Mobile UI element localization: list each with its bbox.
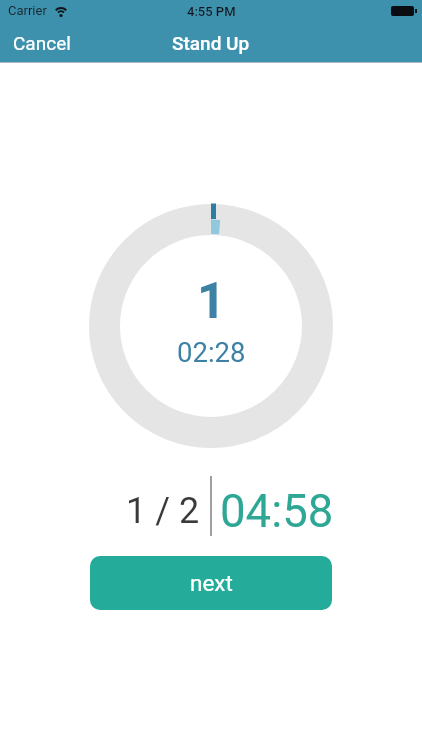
button[interactable]: Cancel [0,26,90,60]
staticText: 04:58 [220,485,334,535]
staticText: Carrier [8,3,47,18]
staticText: Cancel [13,32,71,54]
staticText: 1 / 2 [126,490,200,530]
staticText: 02:28 [177,336,246,368]
staticText: 4:55 PM [187,4,236,19]
staticText: next [190,570,233,596]
staticText: Stand Up [172,32,250,54]
staticText: 1 [197,272,226,331]
button[interactable]: next [90,556,332,610]
